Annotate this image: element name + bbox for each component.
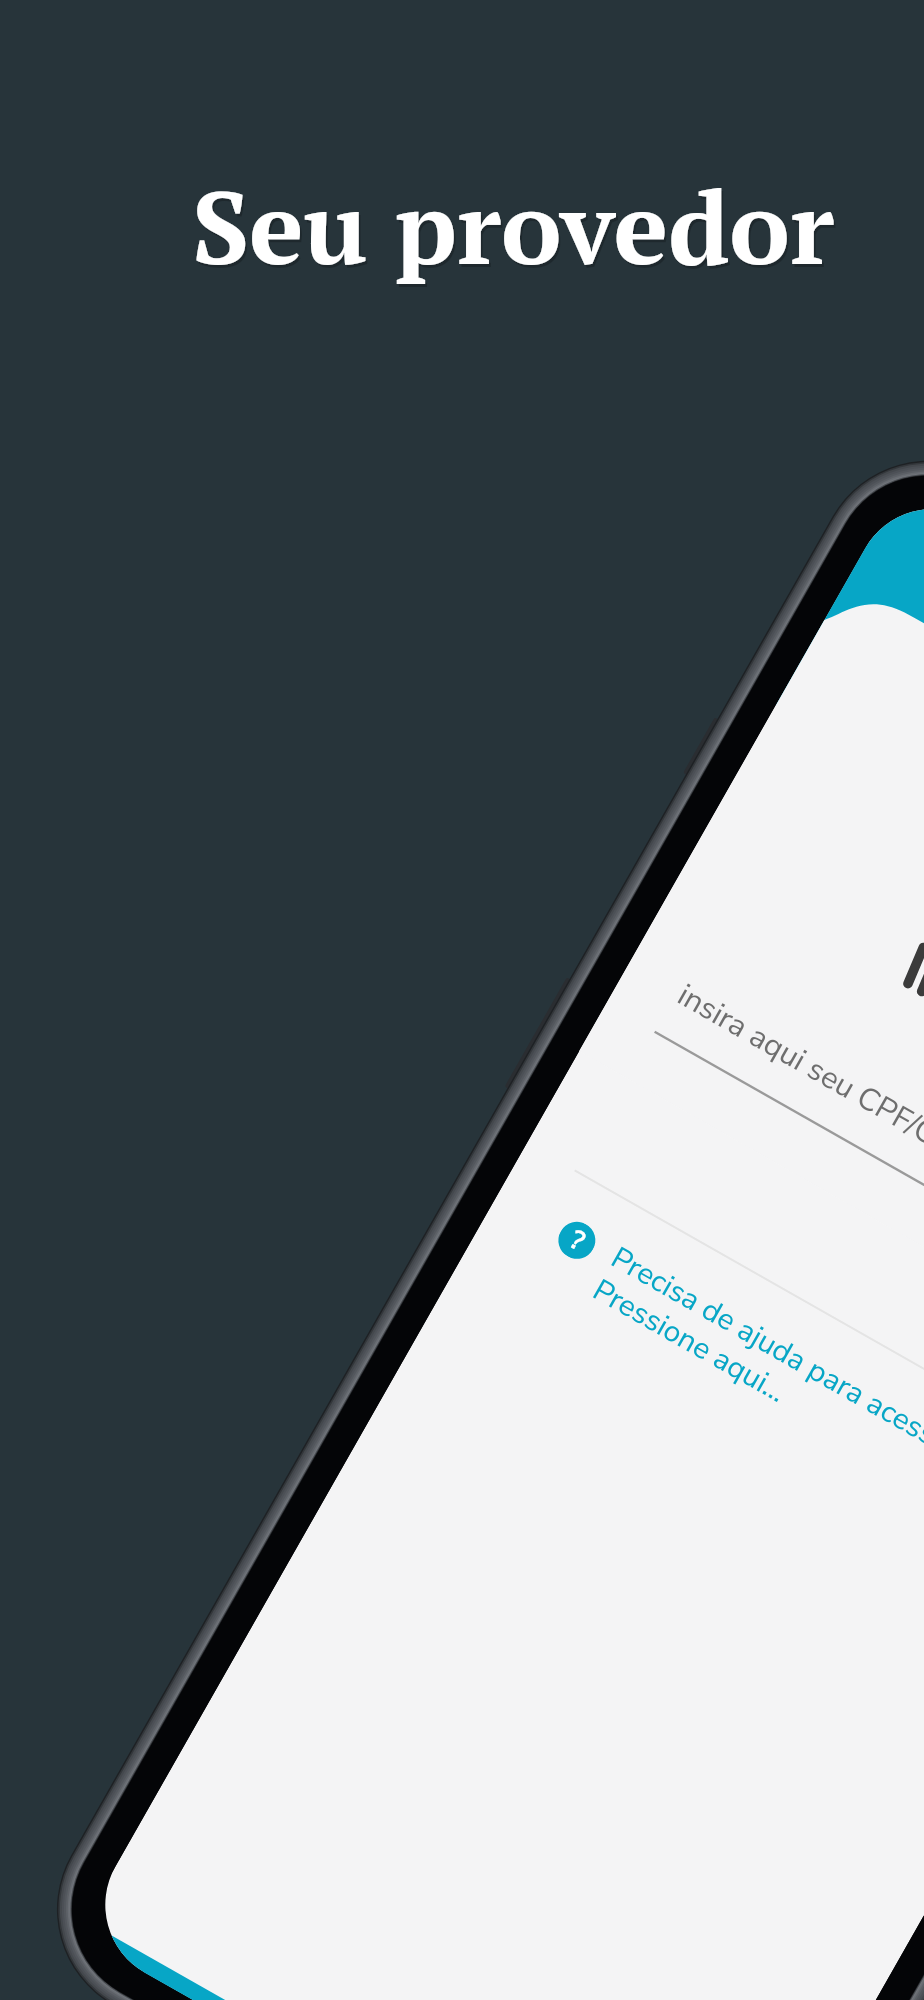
staticText: Seu provedor — [192, 158, 834, 293]
staticText: insira aqui seu CPF/CNPJ — [670, 974, 924, 1180]
staticText: Precisa de ajuda para acessar? Pressione… — [586, 1238, 924, 1506]
button[interactable]: ? — [532, 1215, 924, 1559]
staticText: ? — [563, 1222, 591, 1259]
staticText: Seu provedor — [194, 161, 836, 296]
